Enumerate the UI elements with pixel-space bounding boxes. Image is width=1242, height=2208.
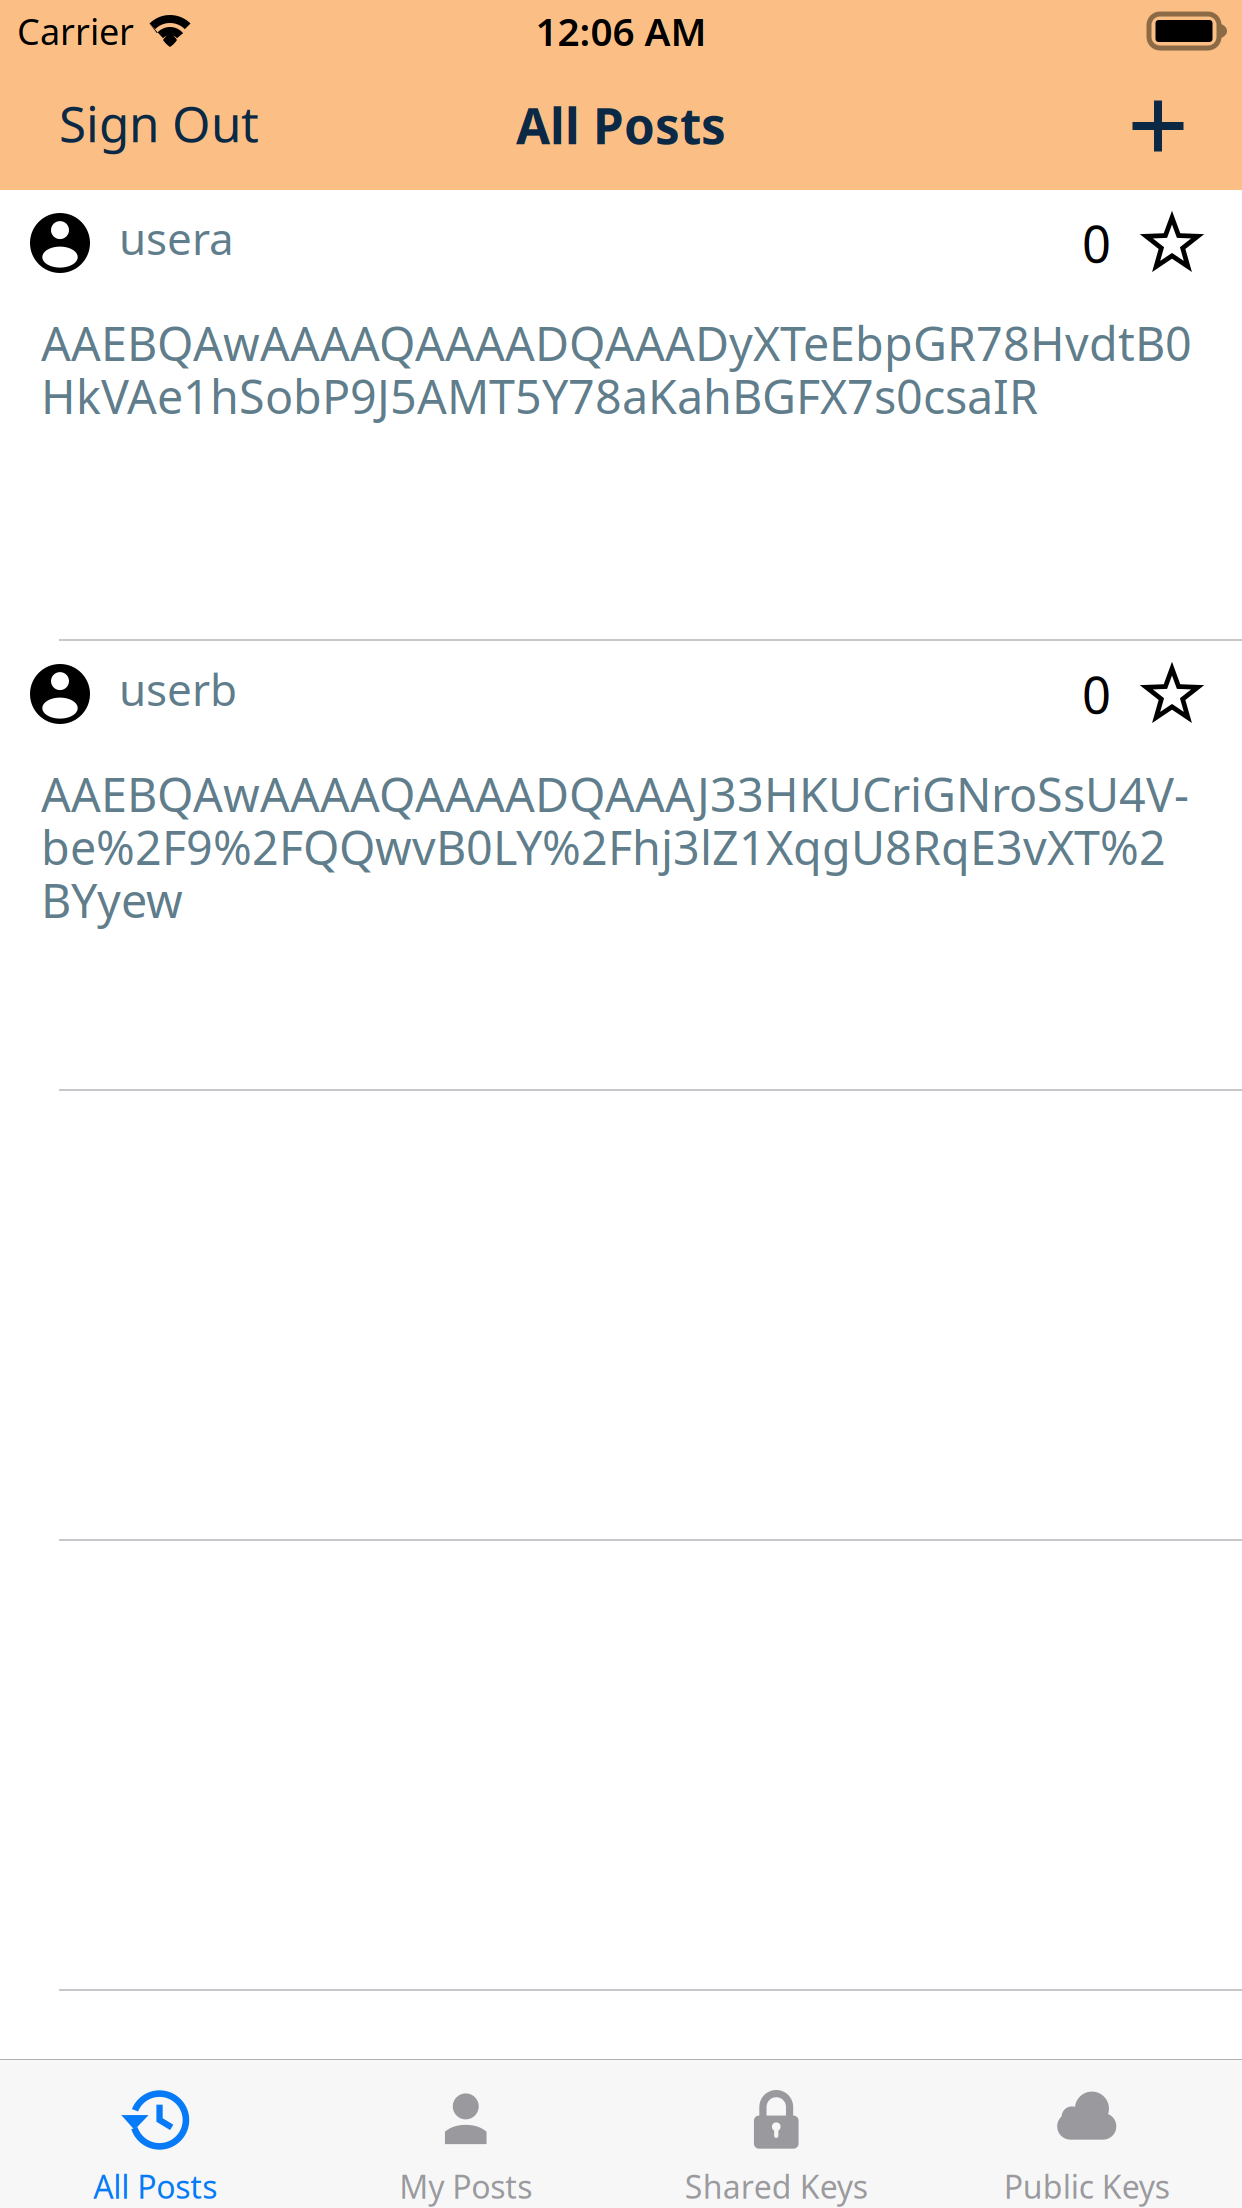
button[interactable]: usera <box>0 190 1242 641</box>
staticText: 12:06 AM <box>535 5 706 57</box>
button[interactable]: All Posts <box>0 2059 310 2208</box>
staticText: All Posts <box>516 92 726 158</box>
button[interactable]: Shared Keys <box>621 2059 931 2208</box>
staticText: All Posts <box>93 2165 217 2207</box>
staticText: 0 <box>1082 660 1111 728</box>
staticText: AAEBQAwAAAAQAAAADQAAAJ33HKUCriGNroSsU4Vb… <box>41 763 1189 931</box>
staticText: Sign Out <box>59 90 259 156</box>
staticText: My Posts <box>399 2165 532 2207</box>
button[interactable]: My Posts <box>310 2059 621 2208</box>
staticText: 0 <box>1082 209 1111 277</box>
staticText: userb <box>119 660 237 718</box>
button[interactable]: New Post <box>1108 71 1208 181</box>
staticText: usera <box>119 209 234 267</box>
button[interactable]: userb <box>0 641 1242 1091</box>
staticText: AAEBQAwAAAAQAAAADQAAADyXTeEbpGR78HvdtB0H… <box>41 312 1192 427</box>
button[interactable]: Public Keys <box>931 2059 1242 2208</box>
staticText: Public Keys <box>1004 2165 1170 2207</box>
button[interactable]: Sign Out <box>45 71 273 181</box>
staticText: Carrier <box>17 7 134 55</box>
staticText: Shared Keys <box>685 2165 868 2207</box>
